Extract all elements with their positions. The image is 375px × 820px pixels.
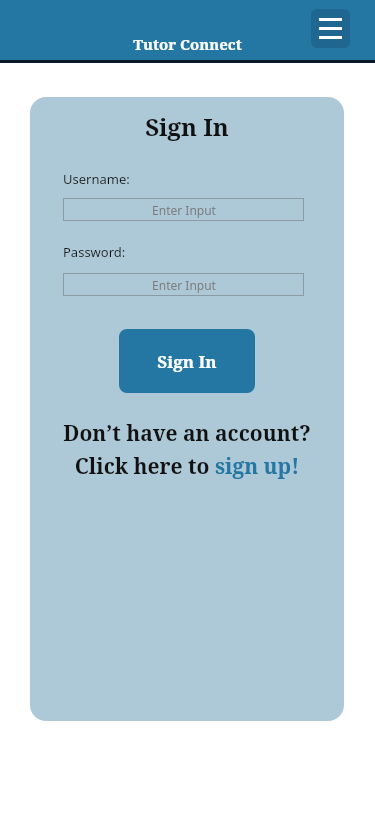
button[interactable]: Sign In — [119, 329, 255, 393]
button[interactable]: Enter Input — [63, 273, 304, 296]
staticText: Enter Input — [152, 277, 216, 293]
staticText: Tutor Connect — [133, 34, 242, 54]
button[interactable]: Don’t have an account? — [30, 419, 344, 481]
staticText: Sign In — [30, 110, 344, 143]
button[interactable]: Open navigation menu — [311, 9, 350, 48]
staticText: Password: — [63, 243, 126, 261]
staticText: Sign In — [157, 350, 217, 373]
staticText: Don’t have an account? — [30, 419, 344, 448]
button[interactable]: Enter Input — [63, 198, 304, 221]
staticText: Click here to sign up! — [30, 452, 344, 481]
staticText: Username: — [63, 170, 130, 188]
staticText: Enter Input — [152, 202, 216, 218]
